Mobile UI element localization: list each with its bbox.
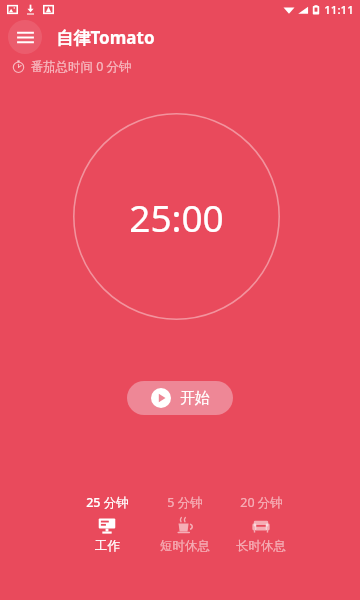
button[interactable]: 5 分钟 <box>147 494 223 554</box>
button[interactable]: 20 分钟 <box>223 494 299 554</box>
staticText: 短时休息 <box>160 538 210 554</box>
staticText: 番茄总时间 0 分钟 <box>30 58 132 75</box>
staticText: 工作 <box>95 538 120 554</box>
button[interactable]: Open navigation drawer <box>8 20 42 54</box>
staticText: 11:11 <box>324 2 354 18</box>
staticText: 25 分钟 <box>86 494 129 511</box>
button[interactable]: 开始 <box>127 381 233 415</box>
staticText: 自律Tomato <box>56 26 155 49</box>
staticText: 长时休息 <box>236 538 286 554</box>
staticText: 20 分钟 <box>240 494 283 511</box>
button[interactable]: 25 分钟 <box>67 494 147 554</box>
staticText: 25:00 <box>129 192 224 242</box>
staticText: 5 分钟 <box>167 494 203 511</box>
staticText: 开始 <box>180 389 210 408</box>
button[interactable]: 25:00 <box>73 113 280 320</box>
